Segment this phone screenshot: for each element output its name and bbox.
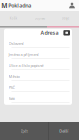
button[interactable]: M [0,0,31,11]
staticText: Doprava [34,17,44,20]
staticText: Údaje [62,17,70,20]
staticText: Zpět [20,128,27,134]
staticText: Košík [10,17,17,20]
staticText: M [1,1,7,10]
button[interactable]: Address details [63,30,70,35]
staticText: Pokladna [8,2,31,9]
button[interactable]: Account [69,0,79,11]
staticText: Stát [8,96,14,101]
staticText: PSČ [8,85,15,90]
button[interactable]: Další [48,122,79,140]
staticText: Adresa [40,29,58,36]
staticText: Ulice a číslo popisné [8,63,43,68]
staticText: Další [59,128,68,134]
staticText: Jméno a příjmení [8,52,38,57]
staticText: Oslovení [8,41,23,46]
button[interactable]: Zpět [0,122,48,140]
staticText: Město [8,74,19,79]
